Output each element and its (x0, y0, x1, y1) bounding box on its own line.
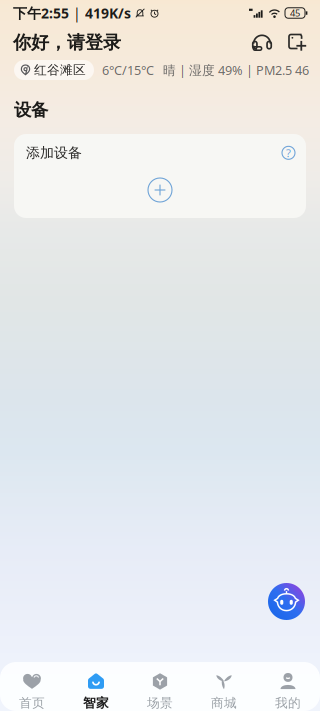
staticText: 45 (290, 7, 300, 19)
staticText: 设备 (14, 99, 48, 121)
button[interactable]: 添加设备 (148, 178, 172, 202)
button[interactable]: 我的 (256, 662, 320, 711)
staticText: 下午2:55 (13, 3, 69, 23)
button[interactable]: 商城 (192, 662, 256, 711)
staticText: 添加设备 (26, 144, 82, 162)
button[interactable]: 智家 (64, 662, 128, 711)
staticText: ? (286, 145, 291, 160)
staticText: 晴 | 湿度 49% | PM2.5 46 (163, 61, 309, 79)
staticText: 智家 (83, 695, 109, 711)
staticText: | (69, 3, 85, 23)
staticText: 我的 (275, 695, 301, 711)
staticText: 红谷滩区 (34, 62, 86, 78)
button[interactable]: 帮助 (282, 146, 295, 159)
staticText: 419K/s (85, 3, 131, 23)
staticText: 场景 (147, 695, 173, 711)
button[interactable]: 智能助手 (268, 583, 305, 620)
button[interactable]: 首页 (0, 662, 64, 711)
staticText: 商城 (211, 695, 237, 711)
button[interactable]: 添加设备 (278, 31, 308, 53)
staticText: 6°C/15°C (102, 61, 154, 79)
staticText: 首页 (19, 695, 45, 711)
staticText: 你好，请登录 (13, 31, 121, 54)
button[interactable]: 客服 (246, 31, 278, 53)
button[interactable]: 场景 (128, 662, 192, 711)
